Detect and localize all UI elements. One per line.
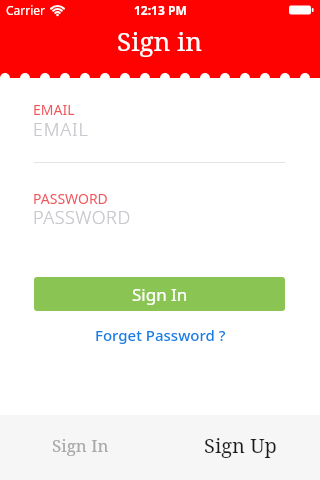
staticText: Forget Password ? bbox=[95, 325, 226, 345]
staticText: Carrier bbox=[6, 2, 46, 18]
staticText: Sign In bbox=[52, 434, 109, 457]
staticText: EMAIL bbox=[33, 100, 75, 119]
staticText: Sign in bbox=[117, 23, 203, 58]
staticText: EMAIL bbox=[33, 117, 89, 142]
button[interactable]: Sign Up bbox=[160, 415, 320, 480]
button[interactable]: Sign In bbox=[34, 277, 285, 311]
staticText: Sign Up bbox=[204, 432, 277, 459]
staticText: 12:13 PM bbox=[134, 2, 187, 18]
button[interactable]: Forget Password ? bbox=[0, 325, 320, 345]
staticText: Sign In bbox=[132, 283, 188, 306]
staticText: PASSWORD bbox=[33, 189, 108, 208]
staticText: PASSWORD bbox=[33, 205, 131, 230]
button[interactable]: Sign In bbox=[0, 415, 160, 480]
